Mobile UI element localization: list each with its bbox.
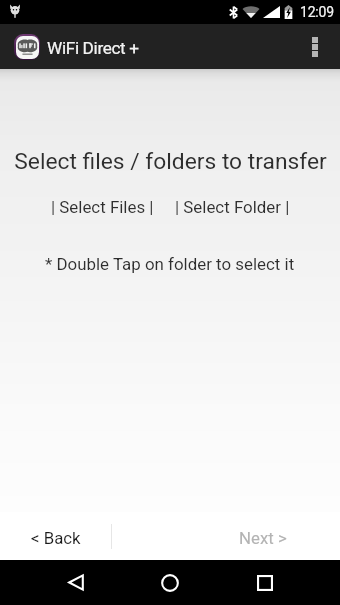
- button[interactable]: Back: [52, 560, 100, 605]
- staticText: WiFi Direct +: [47, 38, 139, 58]
- staticText: 12:09: [300, 4, 334, 20]
- button[interactable]: Home: [146, 560, 194, 605]
- button[interactable]: More options: [302, 24, 340, 69]
- staticText: < Back: [31, 528, 81, 548]
- button[interactable]: | Select Folder |: [173, 193, 292, 221]
- staticText: * Double Tap on folder to select it: [45, 254, 295, 274]
- button[interactable]: < Back: [0, 512, 111, 560]
- staticText: Select files / folders to transfer: [14, 148, 327, 175]
- button[interactable]: Recent apps: [241, 560, 289, 605]
- staticText: Next >: [239, 528, 287, 548]
- button[interactable]: | Select Files |: [49, 193, 156, 221]
- button[interactable]: Next >: [186, 512, 340, 560]
- staticText: | Select Files |: [51, 197, 154, 217]
- staticText: | Select Folder |: [175, 197, 290, 217]
